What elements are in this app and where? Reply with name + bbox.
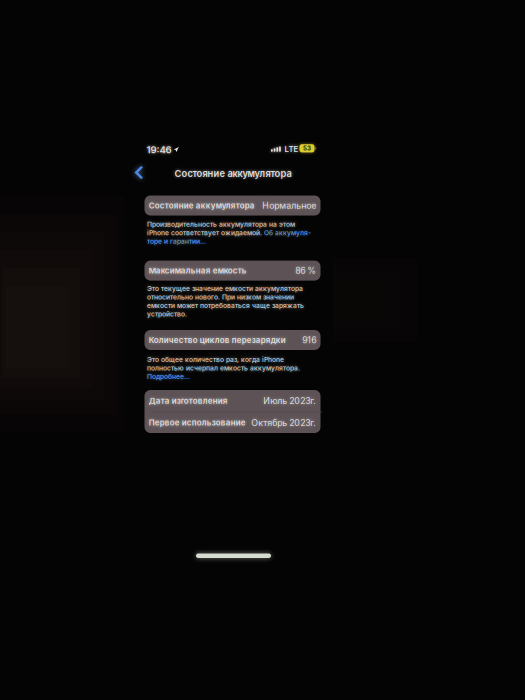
staticText: Это общее количество раз, когда iPhone: [147, 355, 284, 363]
staticText: Подробнее...: [147, 372, 190, 380]
button[interactable]: Количество циклов перезарядки: [144, 330, 320, 350]
staticText: Производительность аккумулятора на этом: [147, 220, 295, 228]
staticText: 19:46: [147, 144, 172, 156]
button[interactable]: Дата изготовления: [144, 390, 320, 412]
staticText: 86 %: [295, 265, 316, 276]
button[interactable]: Состояние аккумулятора: [144, 195, 320, 215]
staticText: Состояние аккумулятора: [174, 168, 291, 179]
staticText: 916: [302, 335, 316, 345]
button[interactable]: Первое использование: [144, 412, 320, 433]
staticText: Максимальная емкость: [149, 266, 247, 275]
staticText: Июль 2023г.: [263, 396, 316, 406]
staticText: 53: [303, 145, 311, 152]
staticText: Количество циклов перезарядки: [149, 335, 286, 345]
staticText: Первое использование: [149, 418, 246, 428]
staticText: Октябрь 2023г.: [251, 417, 316, 428]
staticText: устройство.: [147, 310, 187, 318]
button[interactable]: Максимальная емкость: [144, 261, 320, 281]
staticText: относительно нового. При низком значении: [147, 293, 294, 301]
button[interactable]: Back: [134, 165, 148, 181]
staticText: торе и гарантии...: [147, 237, 206, 245]
staticText: LTE: [284, 144, 298, 154]
staticText: Об аккумуля-: [264, 229, 311, 237]
staticText: полностью исчерпал емкость аккумулятора.: [147, 364, 300, 372]
staticText: Состояние аккумулятора: [149, 201, 255, 210]
staticText: Дата изготовления: [149, 396, 228, 406]
staticText: емкости может потребоваться чаще заряжат…: [147, 301, 304, 310]
staticText: iPhone соответствует ожидаемой.: [147, 229, 264, 237]
staticText: Это текущее значение емкости аккумулятор…: [147, 284, 303, 293]
staticText: Нормальное: [262, 200, 316, 211]
